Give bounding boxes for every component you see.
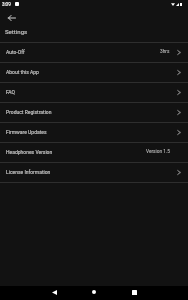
button[interactable]: Firmware Updates [0,123,188,142]
button[interactable]: Home [84,285,104,299]
staticText: Version 1.5 [146,149,170,155]
button[interactable]: Product Registration [0,103,188,122]
button[interactable]: Auto-Off [0,43,188,62]
staticText: About this App [6,69,39,75]
staticText: 3:09 [2,2,11,7]
button[interactable]: Back [7,13,17,23]
button[interactable]: License Information [0,163,188,182]
staticText: Firmware Updates [6,129,47,135]
staticText: Headphones Version [6,149,53,155]
button[interactable]: FAQ [0,83,188,102]
staticText: Settings [5,28,28,35]
staticText: Auto-Off [6,49,25,55]
staticText: License Information [6,169,51,175]
button[interactable]: About this App [0,63,188,82]
button[interactable]: Headphones Version [0,143,188,162]
staticText: FAQ [6,89,16,95]
staticText: 3hrs [160,49,170,55]
button[interactable]: Recent apps [124,285,144,299]
staticText: Product Registration [6,109,52,115]
button[interactable]: Back [44,285,64,299]
